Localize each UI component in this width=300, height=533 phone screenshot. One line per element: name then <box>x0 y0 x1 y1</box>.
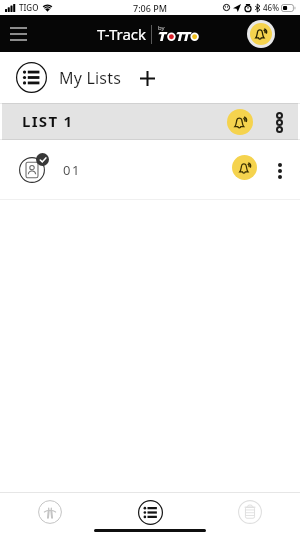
button[interactable]: LIST 1 <box>2 103 298 140</box>
button[interactable]: Lists <box>16 62 47 93</box>
button[interactable]: Alarm <box>232 155 257 180</box>
button[interactable]: More options <box>268 111 290 133</box>
staticText: TIGO <box>19 2 39 13</box>
button[interactable]: Trash <box>236 498 264 526</box>
staticText: T-Track <box>97 24 147 44</box>
staticText: LIST 1 <box>22 111 74 131</box>
button[interactable]: Add list <box>134 65 160 91</box>
button[interactable]: Menu <box>4 20 32 48</box>
staticText: My Lists <box>59 67 122 89</box>
staticText: 7:06 PM <box>133 2 167 14</box>
button[interactable]: Alarm <box>227 109 253 135</box>
staticText: 46% <box>263 2 279 13</box>
staticText: by <box>158 24 165 32</box>
button[interactable]: Notifications <box>250 23 272 45</box>
button[interactable]: Backpacks <box>36 498 64 526</box>
button[interactable]: Lists <box>136 498 164 526</box>
button[interactable]: More options <box>269 160 291 182</box>
staticText: 01 <box>63 161 82 179</box>
